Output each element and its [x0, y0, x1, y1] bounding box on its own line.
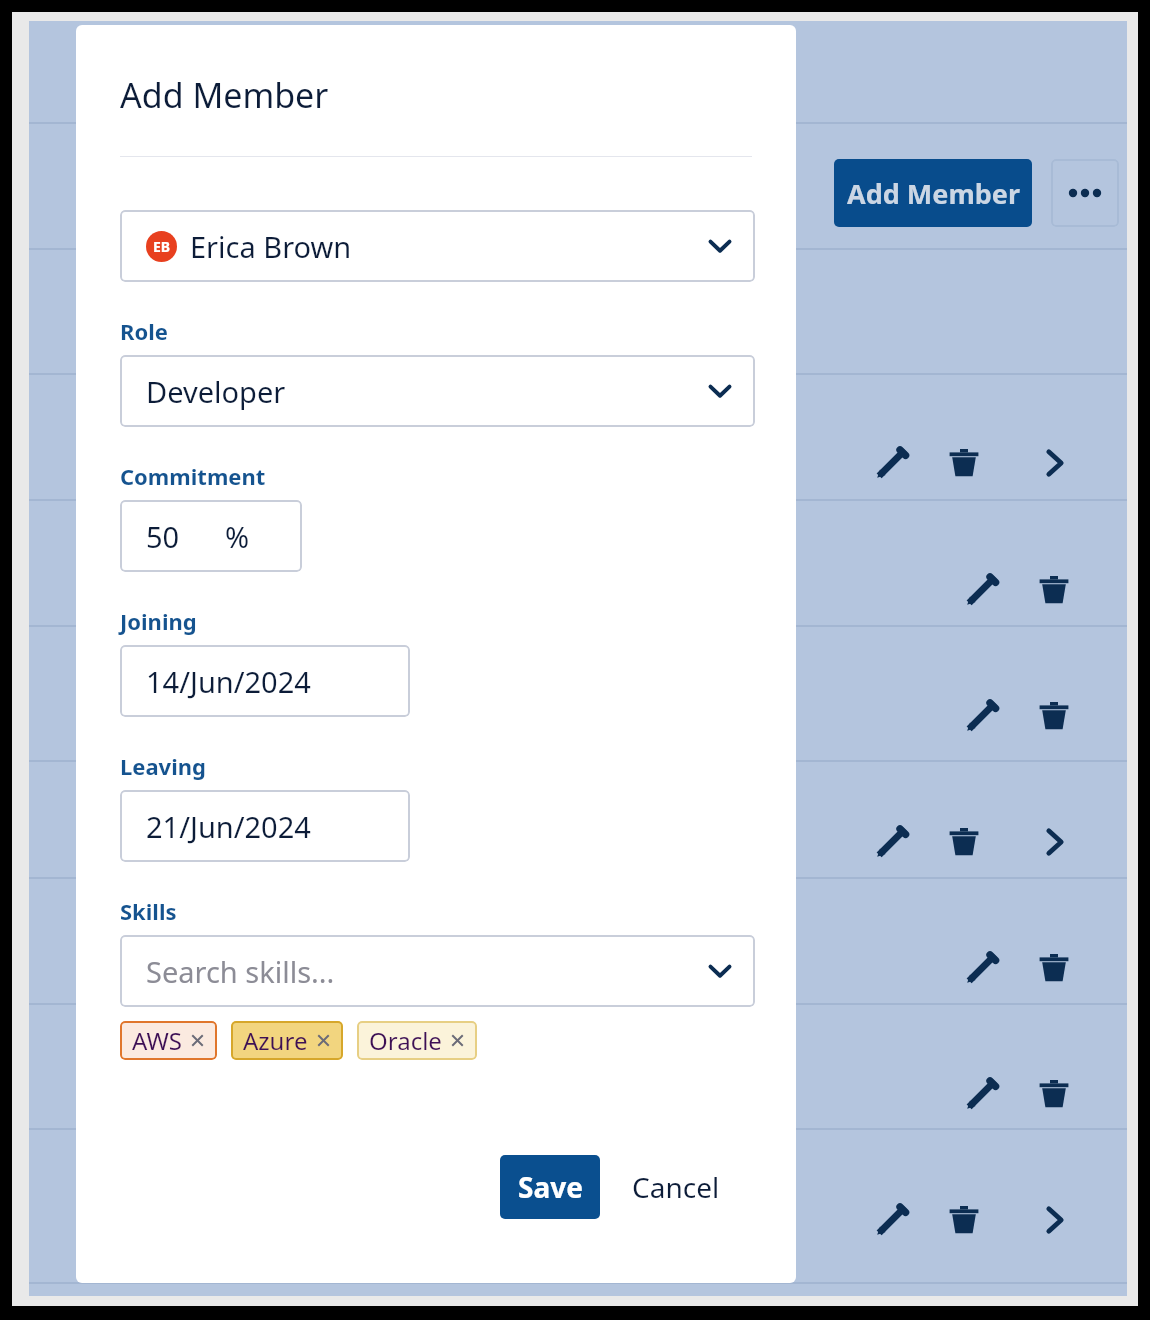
- button[interactable]: Delete: [1027, 941, 1081, 995]
- button[interactable]: Search skills...: [120, 935, 755, 1007]
- staticText: Cancel: [632, 1168, 720, 1206]
- button[interactable]: Delete: [937, 436, 991, 490]
- button[interactable]: Delete: [1027, 1067, 1081, 1121]
- staticText: Skills: [120, 896, 177, 926]
- button[interactable]: 50: [120, 500, 302, 572]
- staticText: Azure: [243, 1024, 308, 1057]
- button[interactable]: Delete: [937, 1193, 991, 1247]
- staticText: 21/Jun/2024: [146, 807, 311, 846]
- staticText: EB: [153, 237, 171, 256]
- staticText: AWS: [132, 1024, 182, 1057]
- button[interactable]: Open: [1027, 1193, 1081, 1247]
- button[interactable]: Oracle: [357, 1021, 477, 1060]
- staticText: Search skills...: [146, 952, 335, 991]
- button[interactable]: Edit: [955, 563, 1009, 617]
- button[interactable]: 21/Jun/2024: [120, 790, 410, 862]
- button[interactable]: Edit: [955, 1067, 1009, 1121]
- staticText: Erica Brown: [190, 227, 352, 266]
- staticText: 14/Jun/2024: [146, 662, 311, 701]
- button[interactable]: Edit: [955, 689, 1009, 743]
- button[interactable]: Open: [1027, 436, 1081, 490]
- button[interactable]: Edit: [955, 941, 1009, 995]
- button[interactable]: Delete: [937, 815, 991, 869]
- button[interactable]: Edit: [865, 1193, 919, 1247]
- staticText: Joining: [120, 606, 197, 636]
- staticText: Commitment: [120, 461, 266, 491]
- staticText: Save: [518, 1168, 583, 1206]
- button[interactable]: Open: [1027, 815, 1081, 869]
- staticText: 50: [146, 517, 180, 556]
- staticText: Oracle: [369, 1024, 442, 1057]
- button[interactable]: Edit: [865, 436, 919, 490]
- button[interactable]: Developer: [120, 355, 755, 427]
- button[interactable]: More options: [1051, 159, 1119, 227]
- staticText: Developer: [146, 372, 286, 411]
- button[interactable]: Save: [500, 1155, 600, 1219]
- button[interactable]: EB: [120, 210, 755, 282]
- staticText: Add Member: [120, 72, 329, 118]
- button[interactable]: Delete: [1027, 563, 1081, 617]
- button[interactable]: Azure: [231, 1021, 343, 1060]
- button[interactable]: Edit: [865, 815, 919, 869]
- button[interactable]: Delete: [1027, 689, 1081, 743]
- staticText: Role: [120, 316, 168, 346]
- staticText: Add Member: [847, 175, 1020, 212]
- staticText: Leaving: [120, 751, 206, 781]
- button[interactable]: Cancel: [618, 1155, 734, 1219]
- staticText: %: [225, 517, 250, 556]
- button[interactable]: AWS: [120, 1021, 217, 1060]
- button[interactable]: Add Member: [834, 159, 1032, 227]
- button[interactable]: 14/Jun/2024: [120, 645, 410, 717]
